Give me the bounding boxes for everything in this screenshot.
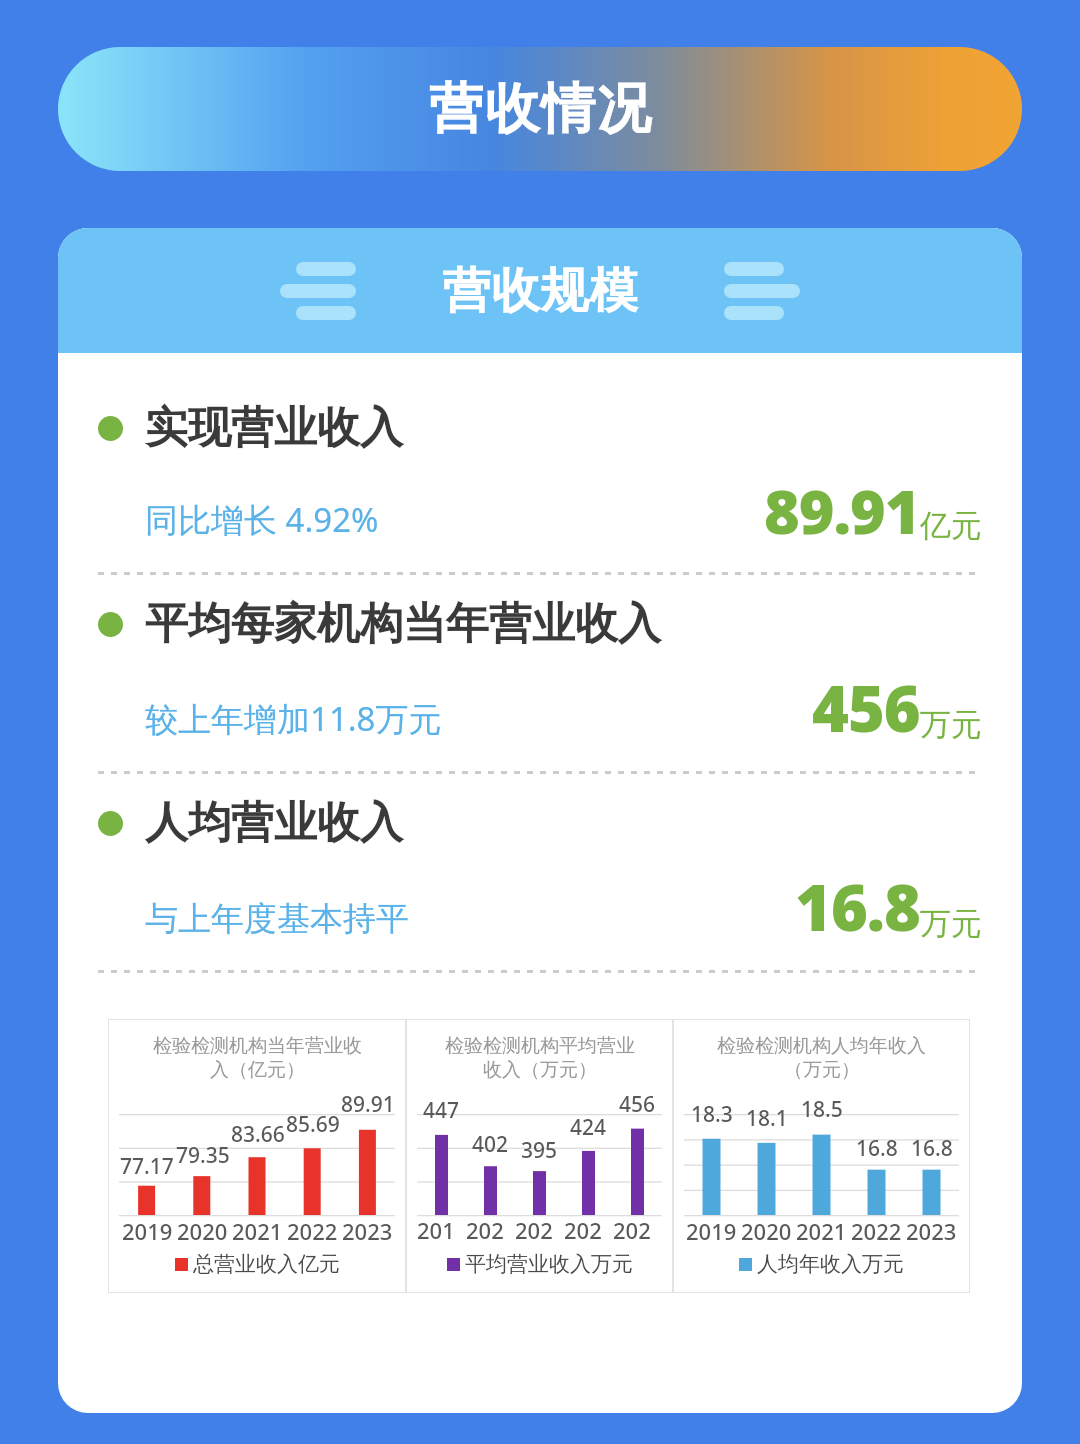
- staticText: 万元: [920, 705, 982, 744]
- staticText: 万元: [920, 904, 982, 943]
- staticText: 456: [812, 665, 920, 751]
- staticText: 平均营业收入万元: [465, 1251, 633, 1277]
- staticText: 同比增长 4.92%: [145, 497, 379, 542]
- staticText: 18.1: [746, 1104, 788, 1133]
- button[interactable]: 人均营业收入: [98, 796, 982, 950]
- staticText: 检验检测机构当年营业收: [153, 1034, 362, 1058]
- staticText: 较上年增加11.8万元: [145, 696, 442, 741]
- staticText: 2020: [466, 1215, 515, 1247]
- staticText: 2023: [342, 1216, 393, 1246]
- staticText: 2021: [796, 1216, 847, 1246]
- button[interactable]: 平均每家机构当年营业收入: [98, 597, 982, 751]
- staticText: （万元）: [784, 1058, 860, 1082]
- staticText: 收入（万元）: [483, 1058, 597, 1082]
- button[interactable]: 检验检测机构平均营业: [406, 1019, 673, 1293]
- staticText: 亿元: [920, 506, 982, 545]
- staticText: 2021: [232, 1216, 283, 1246]
- staticText: 85.69: [286, 1110, 340, 1139]
- button[interactable]: 营收情况: [58, 47, 1022, 171]
- staticText: 395: [521, 1136, 558, 1165]
- staticText: 89.91: [341, 1090, 395, 1119]
- staticText: 18.5: [801, 1095, 843, 1124]
- staticText: 平均每家机构当年营业收入: [145, 597, 661, 651]
- staticText: 77.17: [120, 1152, 174, 1181]
- staticText: 2020: [177, 1216, 228, 1246]
- staticText: 营收情况: [428, 75, 652, 143]
- staticText: 447: [423, 1096, 460, 1125]
- button[interactable]: 检验检测机构人均年收入: [673, 1019, 970, 1293]
- staticText: 89.91: [764, 469, 920, 552]
- staticText: 2022: [564, 1215, 613, 1247]
- staticText: 402: [472, 1130, 509, 1159]
- staticText: 检验检测机构人均年收入: [717, 1034, 926, 1058]
- staticText: 2019: [686, 1216, 737, 1246]
- button[interactable]: 检验检测机构当年营业收: [108, 1019, 406, 1293]
- staticText: 2022: [851, 1216, 902, 1246]
- staticText: 16.8: [856, 1134, 898, 1163]
- staticText: 16.8: [911, 1134, 953, 1163]
- staticText: 入（亿元）: [210, 1058, 305, 1082]
- staticText: 424: [570, 1113, 607, 1142]
- staticText: 实现营业收入: [145, 401, 403, 455]
- staticText: 456: [619, 1090, 656, 1118]
- staticText: 总营业收入亿元: [193, 1251, 340, 1277]
- staticText: 18.3: [691, 1100, 733, 1129]
- button[interactable]: 实现营业收入: [98, 401, 982, 552]
- staticText: 83.66: [231, 1120, 285, 1149]
- staticText: 与上年度基本持平: [145, 898, 409, 940]
- staticText: 人均营业收入: [145, 796, 403, 850]
- staticText: 检验检测机构平均营业: [445, 1034, 635, 1058]
- staticText: 营收规模: [442, 261, 638, 321]
- staticText: 2021: [515, 1215, 564, 1247]
- staticText: 2022: [287, 1216, 338, 1246]
- staticText: 2023: [906, 1216, 957, 1246]
- staticText: 2020: [741, 1216, 792, 1246]
- staticText: 2019: [417, 1215, 466, 1247]
- staticText: 79.35: [176, 1141, 230, 1170]
- staticText: 16.8: [795, 864, 920, 950]
- staticText: 2023: [613, 1215, 662, 1247]
- staticText: 2019: [122, 1216, 173, 1246]
- staticText: 人均年收入万元: [757, 1251, 904, 1277]
